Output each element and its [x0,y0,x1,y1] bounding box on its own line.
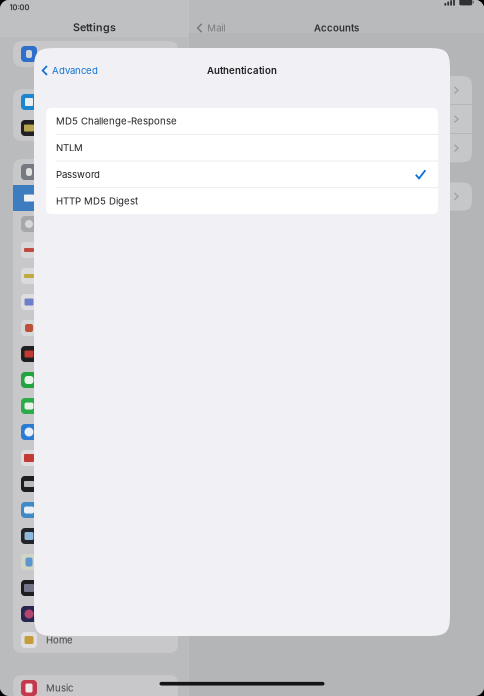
button[interactable]: Translate [13,523,178,549]
staticText: Advanced [52,65,98,76]
button[interactable]: Shazam [13,601,178,627]
button[interactable]: Mail [13,185,178,211]
button[interactable]: Home [13,627,178,653]
button[interactable]: Calendar [13,237,178,263]
button[interactable]: Music [13,675,178,696]
button[interactable]: App Store [13,89,178,115]
button[interactable]: HTTP MD5 Digest [46,188,438,214]
staticText: Password [56,169,100,180]
staticText: Mail [207,22,225,34]
button[interactable]: Notes [13,263,178,289]
button[interactable]: Password [46,161,438,187]
button[interactable] [206,134,472,162]
button[interactable]: Stocks [13,471,178,497]
button[interactable] [206,76,472,104]
button[interactable]: NTLM [46,135,438,161]
staticText: Accounts [314,22,359,34]
button[interactable]: Contacts [13,211,178,237]
staticText: HTTP MD5 Digest [56,195,138,207]
button[interactable] [206,182,472,211]
button[interactable]: Wallet [13,115,178,141]
staticText: Wallet [46,122,73,134]
button[interactable]: Mail [189,15,233,41]
staticText: Mail [46,192,64,204]
staticText: NTLM [56,142,83,153]
staticText: Settings [73,21,116,34]
staticText: Home [46,634,73,646]
staticText: 10:00 [9,3,29,12]
button[interactable]: News [13,445,178,471]
button[interactable]: Messages [13,367,178,393]
button[interactable]: Voice Memos [13,341,178,367]
button[interactable]: Freeform [13,315,178,341]
staticText: Passwords [46,166,95,178]
button[interactable]: Maps [13,549,178,575]
button[interactable]: MD5 Challenge-Response [46,108,438,134]
staticText: MD5 Challenge-Response [56,115,177,127]
button[interactable]: Weather [13,497,178,523]
button[interactable]: Passwords [13,159,178,185]
staticText: Authentication [207,65,277,76]
button[interactable]: FaceTime [13,393,178,419]
button[interactable]: Advanced [34,58,106,83]
button[interactable]: Reminders [13,289,178,315]
button[interactable]: Shortcuts [13,575,178,601]
staticText: Music [46,682,73,694]
button[interactable] [206,105,472,133]
button[interactable]: Safari [13,419,178,445]
button[interactable]: Privacy & Security [13,41,178,67]
